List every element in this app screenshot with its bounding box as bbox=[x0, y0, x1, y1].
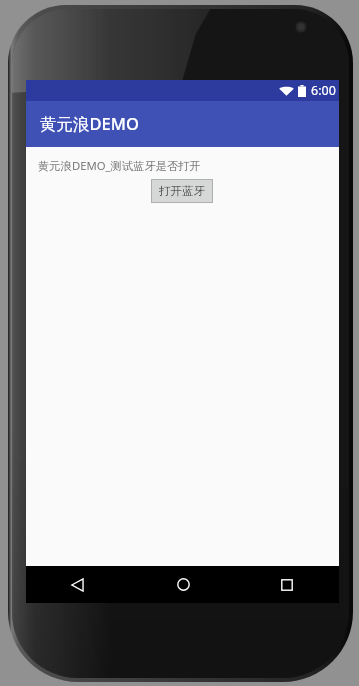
staticText: 6:00 bbox=[311, 82, 336, 99]
staticText: 打开蓝牙 bbox=[159, 184, 205, 198]
button[interactable]: 打开蓝牙 bbox=[151, 179, 213, 203]
staticText: 黄元浪DEMO_测试蓝牙是否打开 bbox=[38, 158, 201, 173]
button[interactable]: Recent apps bbox=[265, 566, 309, 603]
button[interactable]: Back bbox=[56, 566, 100, 603]
button[interactable]: Home bbox=[161, 566, 205, 603]
staticText: 黄元浪DEMO bbox=[40, 112, 139, 135]
